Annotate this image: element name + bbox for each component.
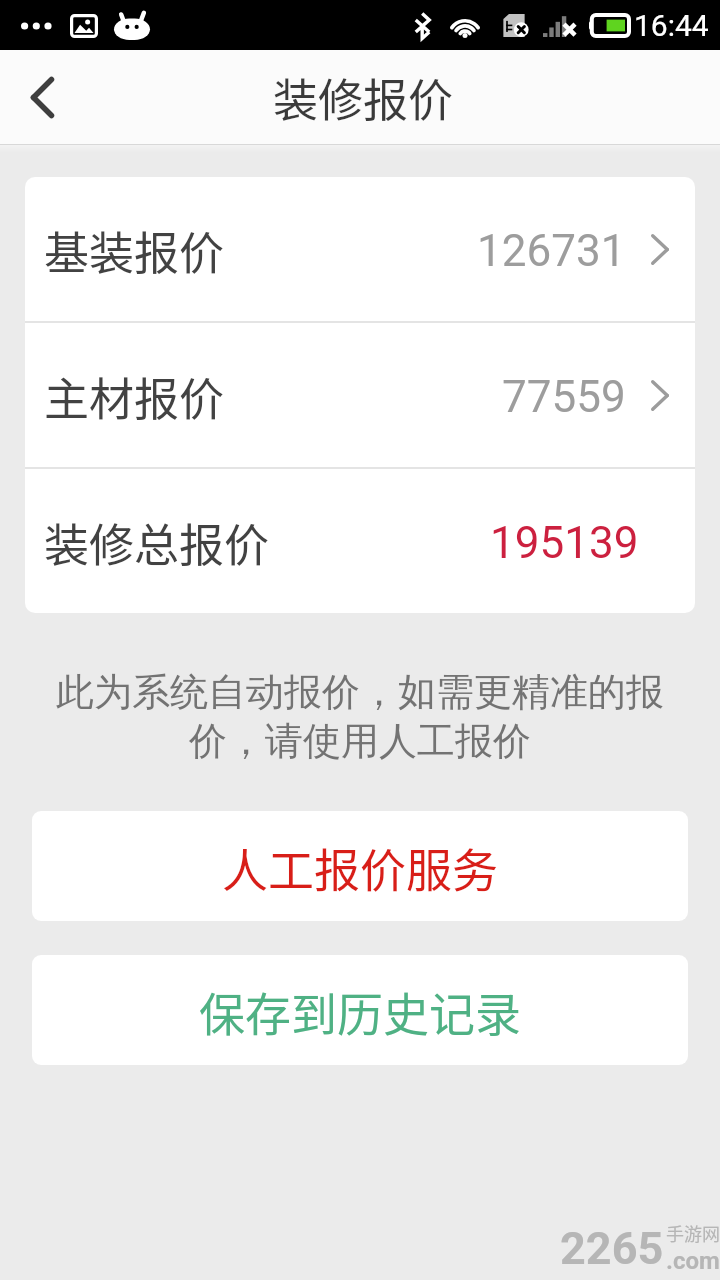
button[interactable]: 人工报价服务 (32, 811, 688, 921)
staticText: 装修总报价 (44, 510, 270, 575)
button[interactable]: 基装报价 (25, 177, 695, 321)
button[interactable]: 装修总报价 (25, 469, 695, 613)
staticText: 手游网 (666, 1220, 720, 1246)
button[interactable]: Back (0, 50, 84, 144)
staticText: 人工报价服务 (222, 834, 498, 901)
staticText: 195139 (490, 517, 639, 569)
button[interactable]: 保存到历史记录 (32, 955, 688, 1065)
staticText: 16:44 (634, 8, 709, 43)
staticText: 77559 (502, 371, 626, 423)
staticText: 装修报价 (273, 65, 454, 130)
staticText: 保存到历史记录 (199, 978, 521, 1045)
button[interactable]: 主材报价 (25, 323, 695, 467)
staticText: 2265 (560, 1222, 664, 1275)
staticText: 此为系统自动报价，如需更精准的报 价，请使用人工报价 (0, 668, 720, 766)
staticText: 基装报价 (44, 218, 225, 283)
staticText: .com (666, 1247, 720, 1275)
staticText: 主材报价 (44, 364, 225, 429)
staticText: 126731 (477, 225, 626, 277)
